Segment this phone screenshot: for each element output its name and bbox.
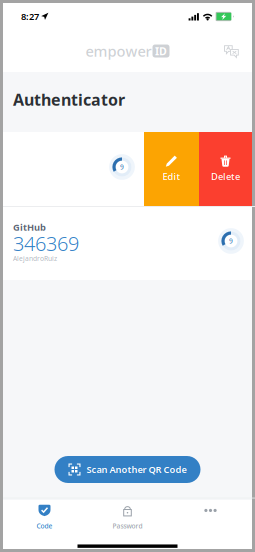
button[interactable]: Edit <box>144 132 199 206</box>
staticText: 9 <box>229 237 233 245</box>
staticText: empower <box>85 41 151 61</box>
button[interactable]: More <box>169 497 252 537</box>
staticText: 9 <box>120 163 124 171</box>
button[interactable]: Scan Another QR Code <box>54 456 200 483</box>
staticText: Delete <box>211 170 240 183</box>
staticText: ID <box>155 44 167 58</box>
staticText: Code <box>36 521 52 530</box>
staticText: GitHub <box>13 221 46 233</box>
staticText: AlejandroRuiz <box>13 254 57 263</box>
staticText: Password <box>112 521 142 530</box>
staticText: 8:27 <box>21 10 39 23</box>
staticText: 346369 <box>13 230 79 257</box>
button[interactable]: Delete <box>199 132 252 206</box>
button[interactable]: Translate <box>224 43 252 58</box>
button[interactable]: Password <box>86 497 169 537</box>
staticText: Scan Another QR Code <box>86 463 186 476</box>
button[interactable]: Code <box>3 497 86 537</box>
staticText: Authenticator <box>13 89 125 110</box>
staticText: Edit <box>162 170 180 183</box>
